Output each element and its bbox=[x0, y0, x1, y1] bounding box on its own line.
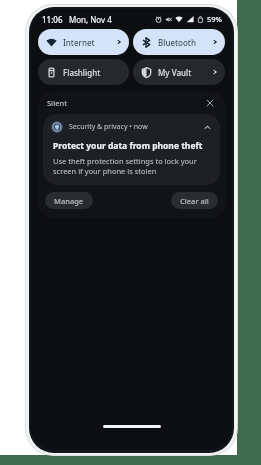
staticText: Protect your data from phone theft bbox=[53, 140, 203, 152]
staticText: 11:06 bbox=[42, 14, 63, 25]
button[interactable]: Collapse notification bbox=[201, 121, 213, 133]
staticText: Silent bbox=[47, 98, 68, 108]
button[interactable]: Manage bbox=[45, 192, 93, 209]
button[interactable]: My Vault bbox=[133, 59, 225, 85]
staticText: My Vault bbox=[158, 67, 192, 78]
button[interactable]: Security & privacy • now bbox=[43, 114, 220, 185]
staticText: Internet bbox=[63, 37, 95, 48]
button[interactable]: Flashlight bbox=[38, 59, 129, 85]
staticText: Security & privacy • now bbox=[69, 122, 148, 132]
staticText: Manage bbox=[54, 196, 84, 206]
staticText: Use theft protection settings to lock yo… bbox=[53, 156, 211, 176]
button[interactable]: Clear all bbox=[171, 192, 218, 209]
staticText: Clear all bbox=[180, 196, 209, 206]
button[interactable]: Bluetooth bbox=[133, 29, 225, 55]
button[interactable]: Dismiss silent notifications bbox=[204, 97, 216, 109]
staticText: Bluetooth bbox=[158, 37, 196, 48]
staticText: 59% bbox=[207, 14, 222, 24]
button[interactable]: Internet bbox=[38, 29, 129, 55]
staticText: Mon, Nov 4 bbox=[69, 14, 112, 25]
staticText: Flashlight bbox=[63, 67, 101, 78]
